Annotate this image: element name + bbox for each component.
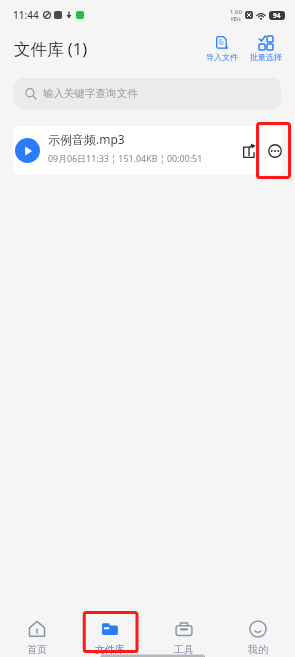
staticText: 示例音频.mp3 [48, 131, 125, 147]
button[interactable]: 我的 [221, 607, 295, 657]
staticText: 批量选择 [250, 52, 282, 62]
staticText: 工具 [174, 643, 194, 656]
staticText: 输入关键字查询文件 [43, 87, 138, 100]
button[interactable]: Share [239, 141, 259, 161]
button[interactable]: 文件库 [73, 607, 147, 657]
button[interactable]: 首页 [0, 607, 73, 657]
button[interactable]: 批量选择 [248, 34, 284, 64]
staticText: KB/s [231, 16, 241, 22]
staticText: 我的 [248, 643, 268, 656]
button[interactable]: 输入关键字查询文件 [14, 78, 281, 109]
button[interactable]: 工具 [147, 607, 221, 657]
staticText: 文件库 (1) [14, 37, 88, 60]
button[interactable]: 导入文件 [204, 34, 240, 64]
staticText: 1.60 [230, 8, 242, 16]
staticText: 导入文件 [206, 52, 238, 62]
staticText: 首页 [27, 643, 47, 656]
staticText: 09月06日11:33 ¦ 151.04KB ¦ 00:00:51 [48, 152, 203, 164]
button[interactable]: 示例音频.mp3 [13, 126, 282, 175]
staticText: 11:44 [13, 8, 39, 22]
button[interactable]: More options [265, 141, 282, 161]
staticText: 文件库 [95, 643, 125, 656]
staticText: 94 [273, 11, 281, 20]
